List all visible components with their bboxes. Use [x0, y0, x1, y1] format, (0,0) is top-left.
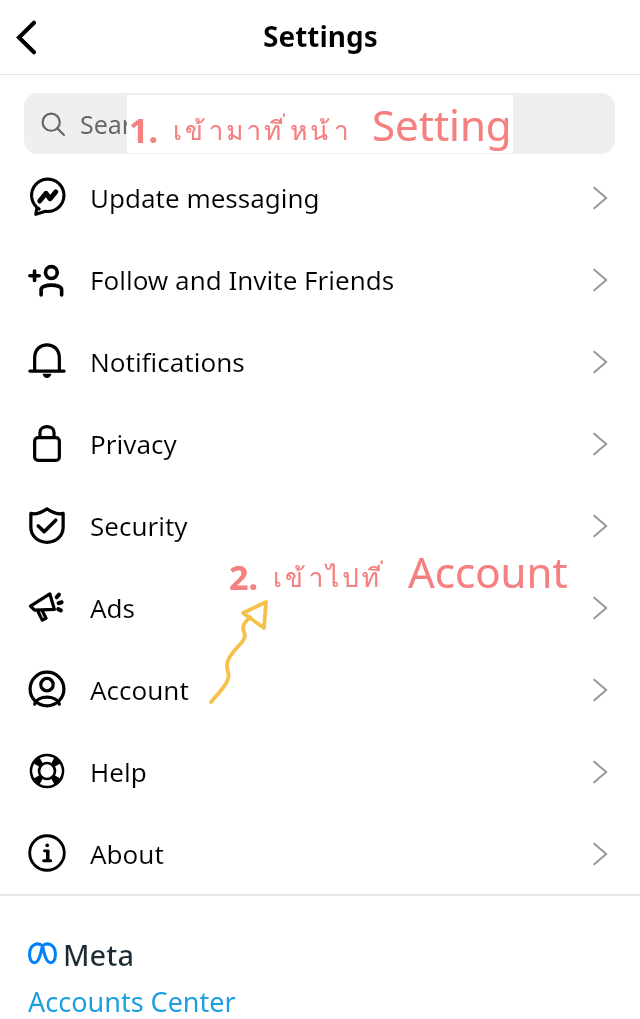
button[interactable]: Privacy: [0, 402, 640, 484]
staticText: Search: [80, 107, 160, 141]
staticText: เข้าไปที่: [273, 557, 388, 598]
staticText: 2.: [229, 554, 259, 600]
staticText: Follow and Invite Friends: [90, 262, 395, 297]
staticText: Ads: [90, 590, 136, 625]
staticText: Account: [408, 543, 568, 600]
staticText: Notifications: [90, 344, 245, 379]
button[interactable]: About: [0, 812, 640, 894]
staticText: Meta: [63, 935, 134, 974]
button[interactable]: Notifications: [0, 320, 640, 402]
staticText: Update messaging: [90, 180, 320, 215]
staticText: Settings: [263, 17, 378, 55]
staticText: 1.: [129, 107, 159, 153]
button[interactable]: Accounts Center: [28, 983, 236, 1019]
button[interactable]: Back: [0, 0, 51, 75]
button[interactable]: Security: [0, 484, 640, 566]
staticText: Setting: [372, 96, 512, 153]
button[interactable]: Update messaging: [0, 156, 640, 238]
staticText: Security: [90, 508, 188, 543]
button[interactable]: Help: [0, 730, 640, 812]
button[interactable]: Ads: [0, 566, 640, 648]
staticText: เข้ามาที่หน้า: [173, 110, 352, 151]
staticText: About: [90, 836, 164, 871]
staticText: Help: [90, 754, 147, 789]
staticText: Privacy: [90, 426, 177, 461]
staticText: Account: [90, 672, 189, 707]
button[interactable]: Account: [0, 648, 640, 730]
button[interactable]: Search: [24, 93, 615, 154]
button[interactable]: Follow and Invite Friends: [0, 238, 640, 320]
